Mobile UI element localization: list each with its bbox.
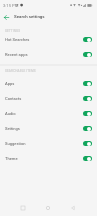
staticText: Theme	[5, 156, 18, 161]
staticText: Suggestion	[5, 141, 26, 146]
other: Toggle	[83, 111, 92, 116]
staticText: 3:15 PM	[3, 3, 19, 8]
staticText: Search settings	[14, 14, 45, 19]
other: Toggle	[83, 126, 92, 131]
staticText: Contacts	[5, 96, 22, 101]
button[interactable]: Back	[0, 10, 14, 24]
staticText: SEARCHABLE ITEMS	[5, 69, 36, 73]
staticText: Apps	[5, 81, 15, 86]
other: Toggle	[83, 156, 92, 161]
other: Toggle	[83, 141, 92, 146]
button[interactable]: Contacts	[0, 91, 97, 106]
other: Toggle	[83, 37, 92, 42]
button[interactable]: Settings	[0, 121, 97, 136]
staticText: SETTINGS	[5, 29, 21, 33]
staticText: Audio	[5, 111, 16, 116]
button[interactable]: Hot Searches	[0, 32, 97, 47]
button[interactable]: Recent apps	[0, 47, 97, 62]
staticText: Settings	[5, 126, 20, 131]
staticText: Hot Searches	[5, 37, 30, 42]
other: Toggle	[83, 52, 92, 57]
button[interactable]: Suggestion	[0, 136, 97, 151]
button[interactable]: Audio	[0, 106, 97, 121]
other: Toggle	[83, 81, 92, 86]
button[interactable]: Recent apps	[12, 200, 34, 216]
button[interactable]: Apps	[0, 76, 97, 91]
button[interactable]: Theme	[0, 151, 97, 166]
staticText: Recent apps	[5, 52, 28, 57]
button[interactable]: Home	[37, 200, 59, 216]
other: Toggle	[83, 96, 92, 101]
